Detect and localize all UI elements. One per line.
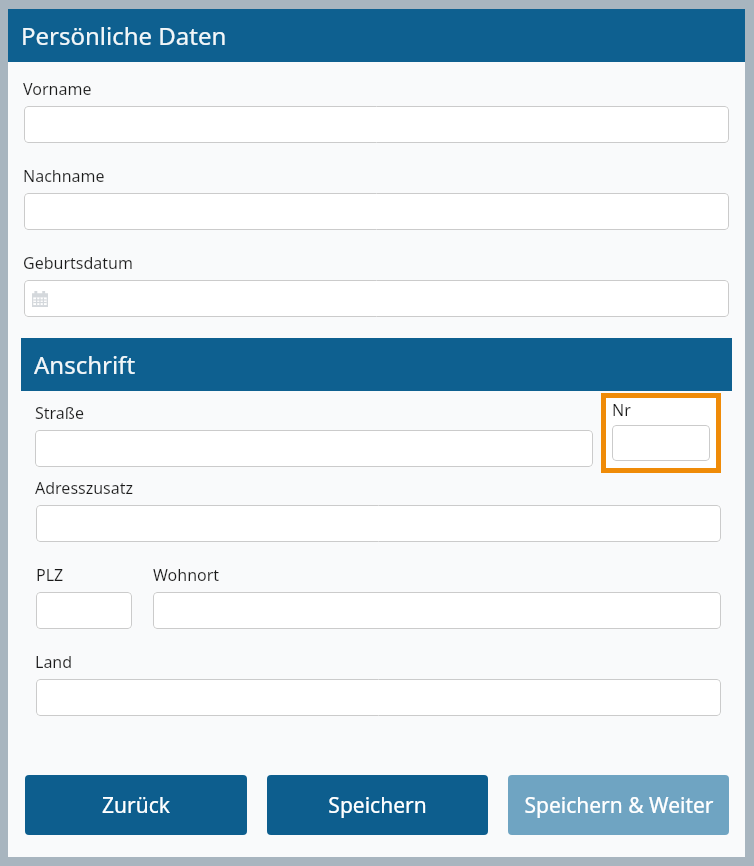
button[interactable] — [24, 193, 729, 230]
button[interactable] — [612, 425, 710, 461]
button[interactable] — [24, 106, 729, 143]
staticText: Geburtsdatum — [23, 252, 133, 274]
button[interactable] — [36, 592, 132, 629]
staticText: Adresszusatz — [35, 477, 134, 499]
staticText: Speichern — [328, 791, 427, 820]
staticText: Anschrift — [34, 348, 136, 381]
button[interactable] — [36, 505, 721, 542]
button[interactable] — [153, 592, 721, 629]
button[interactable]: Speichern & Weiter — [508, 775, 729, 835]
button[interactable]: Zurück — [25, 775, 247, 835]
button[interactable]: Speichern — [267, 775, 488, 835]
button[interactable] — [35, 430, 593, 467]
staticText: Speichern & Weiter — [524, 791, 714, 820]
button[interactable] — [36, 679, 721, 716]
staticText: Nr — [612, 399, 631, 421]
staticText: Straße — [35, 402, 84, 424]
staticText: Wohnort — [153, 564, 220, 586]
button[interactable]: Datum auswählen — [24, 280, 729, 317]
staticText: Nachname — [23, 165, 105, 187]
staticText: Land — [35, 651, 73, 673]
staticText: PLZ — [36, 564, 64, 586]
staticText: Zurück — [102, 791, 170, 820]
staticText: Vorname — [23, 78, 92, 100]
staticText: Persönliche Daten — [21, 19, 227, 52]
